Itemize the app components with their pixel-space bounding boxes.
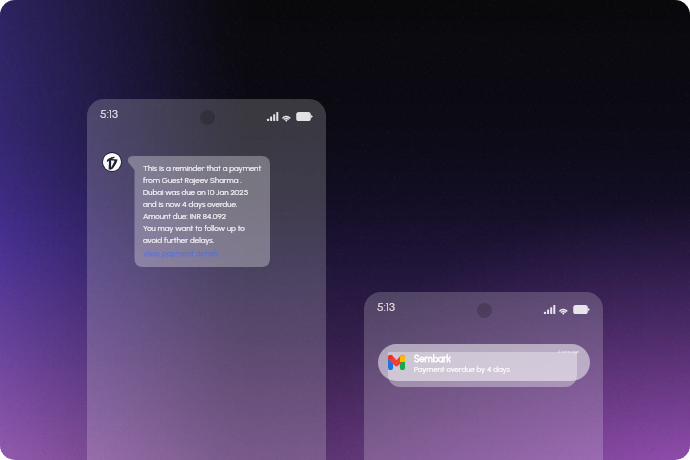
staticText: 4 mins ago: [558, 349, 579, 354]
staticText: 5:13: [377, 300, 395, 314]
staticText: Payment overdue by 4 days: [414, 364, 510, 373]
button[interactable]: Sembark: [378, 344, 590, 381]
button[interactable]: This is a reminder that a payment from G…: [128, 156, 270, 267]
staticText: View payment details: [143, 248, 219, 258]
staticText: 5:13: [100, 107, 118, 121]
staticText: Sembark: [414, 353, 451, 364]
staticText: This is a reminder that a payment from G…: [143, 163, 262, 245]
